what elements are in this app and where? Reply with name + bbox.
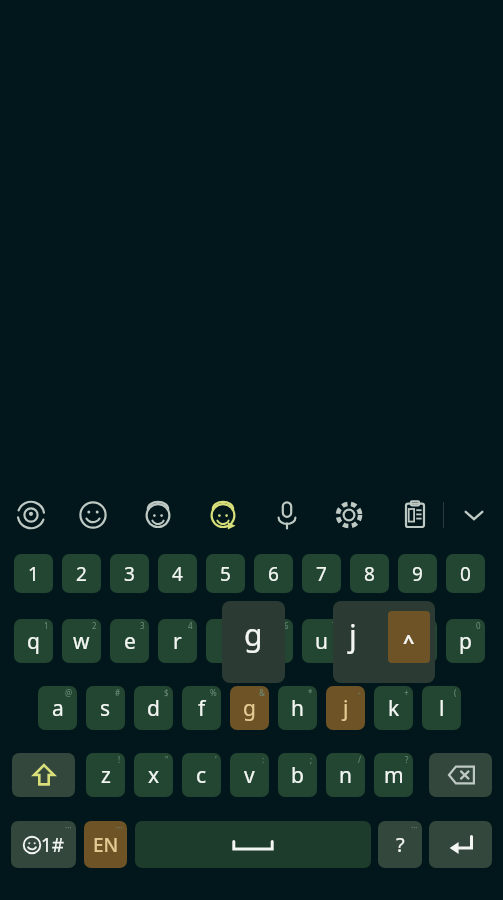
staticText: 4 <box>188 620 193 631</box>
button[interactable]: 8 <box>350 554 389 593</box>
button[interactable]: Stickers <box>136 493 180 537</box>
button[interactable]: 0 <box>446 554 485 593</box>
button[interactable]: Clipboard <box>393 493 437 537</box>
button[interactable]: ( <box>422 686 461 730</box>
staticText: 3 <box>124 561 135 587</box>
button[interactable]: - <box>326 686 365 730</box>
staticText: * <box>308 687 313 698</box>
button[interactable]: ? <box>374 753 413 797</box>
staticText: c <box>196 761 207 790</box>
button[interactable]: ··· <box>378 821 422 868</box>
button[interactable]: 5 <box>206 554 245 593</box>
button[interactable]: Settings <box>327 493 371 537</box>
button[interactable]: 8 <box>350 619 389 663</box>
staticText: / <box>358 754 361 765</box>
button[interactable]: @ <box>38 686 77 730</box>
staticText: % <box>210 687 217 698</box>
button[interactable]: + <box>374 686 413 730</box>
staticText: 3 <box>140 620 145 631</box>
button[interactable]: ' <box>182 753 221 797</box>
staticText: l <box>439 694 445 723</box>
staticText: ? <box>405 754 409 765</box>
staticText: 6 <box>268 561 279 587</box>
button[interactable]: 1 <box>14 554 53 593</box>
staticText: ' <box>215 754 217 765</box>
staticText: : <box>262 754 265 765</box>
staticText: @ <box>65 687 73 698</box>
button[interactable]: 3 <box>110 554 149 593</box>
staticText: u <box>315 627 328 656</box>
button[interactable]: & <box>230 686 269 730</box>
button[interactable]: # <box>86 686 125 730</box>
staticText: g <box>243 694 256 723</box>
button[interactable]: 5 <box>206 619 245 663</box>
button[interactable]: Shift <box>12 753 75 797</box>
button[interactable]: 7 <box>302 554 341 593</box>
button[interactable]: Voice search <box>9 493 53 537</box>
button[interactable]: 2 <box>62 554 101 593</box>
button[interactable]: 0 <box>446 619 485 663</box>
staticText: 1 <box>44 620 49 631</box>
staticText: ! <box>118 754 121 765</box>
staticText: r <box>173 627 182 656</box>
button[interactable]: Emoji <box>71 493 115 537</box>
button[interactable]: Voice input <box>265 493 309 537</box>
staticText: ; <box>310 754 313 765</box>
staticText: d <box>147 694 160 723</box>
staticText: " <box>165 754 169 765</box>
button[interactable]: ; <box>278 753 317 797</box>
staticText: 0 <box>476 620 481 631</box>
button[interactable]: 2 <box>62 619 101 663</box>
button[interactable]: 4 <box>158 619 197 663</box>
staticText: 1# <box>41 832 65 858</box>
button[interactable]: * <box>278 686 317 730</box>
button[interactable]: $ <box>134 686 173 730</box>
staticText: 4 <box>172 561 183 587</box>
button[interactable]: 6 <box>254 554 293 593</box>
staticText: ··· <box>411 822 418 833</box>
staticText: ··· <box>116 822 123 833</box>
staticText: z <box>101 761 111 790</box>
staticText: - <box>358 687 361 698</box>
button[interactable]: Emoji and symbols <box>11 821 76 868</box>
staticText: x <box>148 761 160 790</box>
button[interactable]: Space <box>135 821 371 868</box>
staticText: j <box>343 694 349 723</box>
button[interactable]: 9 <box>398 554 437 593</box>
button[interactable]: ! <box>86 753 125 797</box>
staticText: 7 <box>316 561 327 587</box>
staticText: e <box>124 627 136 656</box>
button[interactable]: ··· <box>84 821 127 868</box>
staticText: s <box>100 694 111 723</box>
button[interactable]: 9 <box>398 619 437 663</box>
staticText: ? <box>396 831 405 858</box>
button[interactable]: Collapse keyboard <box>452 493 496 537</box>
staticText: b <box>291 761 304 790</box>
button[interactable]: 4 <box>158 554 197 593</box>
button[interactable]: Backspace <box>429 753 492 797</box>
button[interactable]: Avatar stickers <box>201 493 245 537</box>
button[interactable]: 1 <box>14 619 53 663</box>
button[interactable]: % <box>182 686 221 730</box>
staticText: m <box>384 761 404 790</box>
button[interactable]: 6 <box>254 619 293 663</box>
button[interactable]: / <box>326 753 365 797</box>
staticText: ··· <box>65 822 72 833</box>
staticText: 5 <box>220 561 231 587</box>
staticText: j <box>349 615 357 656</box>
staticText: k <box>388 694 400 723</box>
button[interactable]: ^ <box>388 611 430 663</box>
staticText: p <box>459 627 472 656</box>
button[interactable]: 7 <box>302 619 341 663</box>
button[interactable]: : <box>230 753 269 797</box>
button[interactable]: " <box>134 753 173 797</box>
staticText: 6 <box>284 620 289 631</box>
button[interactable]: Enter <box>429 821 492 868</box>
button[interactable]: 3 <box>110 619 149 663</box>
staticText: o <box>411 627 424 656</box>
staticText: 1 <box>28 561 39 587</box>
